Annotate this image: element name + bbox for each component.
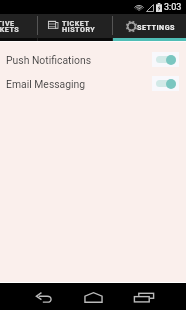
button[interactable]: SETTINGS: [113, 14, 186, 41]
staticText: 3:03: [164, 2, 182, 13]
staticText: SETTINGS: [137, 23, 175, 31]
button[interactable]: Toggle: [152, 52, 179, 67]
button[interactable]: Push Notifications: [0, 47, 186, 71]
button[interactable]: ACTIVE TICKETS: [0, 14, 37, 41]
button[interactable]: TICKET HISTORY: [38, 14, 112, 41]
staticText: TICKET HISTORY: [62, 19, 96, 34]
staticText: Push Notifications: [6, 54, 92, 66]
button[interactable]: Recent apps: [127, 286, 160, 308]
button[interactable]: Toggle: [152, 76, 179, 91]
button[interactable]: Back: [27, 286, 60, 308]
button[interactable]: Home: [77, 286, 110, 308]
staticText: ACTIVE TICKETS: [0, 19, 20, 34]
staticText: Email Messaging: [6, 78, 86, 90]
button[interactable]: Email Messaging: [0, 71, 186, 95]
